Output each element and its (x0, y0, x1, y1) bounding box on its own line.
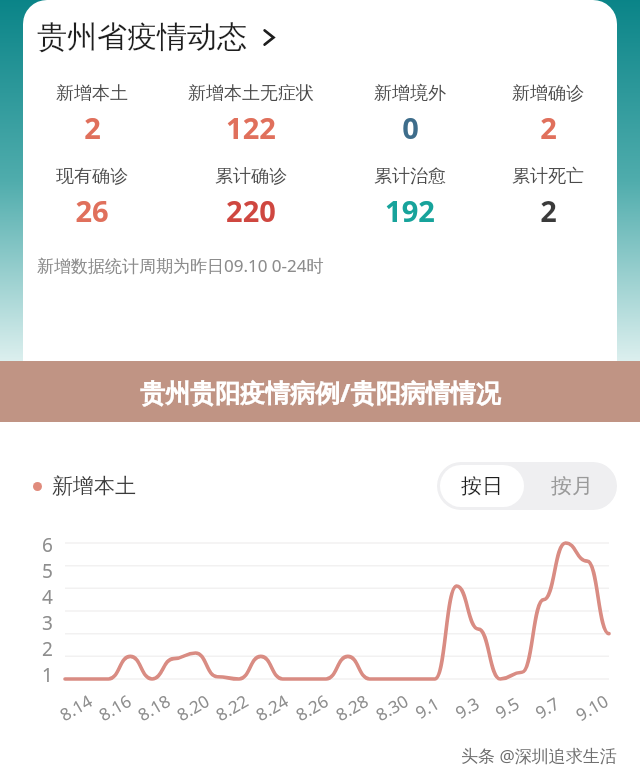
staticText: 122 (226, 108, 276, 147)
staticText: 新增确诊 (512, 82, 584, 105)
staticText: 0 (402, 108, 419, 147)
staticText: 2 (42, 636, 53, 662)
button[interactable]: 新增境外 (341, 82, 479, 147)
staticText: 9.1 (411, 691, 444, 724)
staticText: 现有确诊 (56, 165, 128, 188)
staticText: 按日 (461, 473, 503, 499)
staticText: 192 (385, 191, 435, 230)
staticText: 9.5 (491, 691, 524, 724)
staticText: 累计确诊 (215, 165, 287, 188)
button[interactable]: 贵州省疫情动态 (37, 18, 278, 56)
staticText: 新增境外 (374, 82, 446, 105)
staticText: 2 (540, 191, 557, 230)
staticText: 头条 @深圳追求生活 (461, 744, 617, 767)
staticText: 按月 (551, 473, 593, 499)
staticText: 8.22 (211, 689, 252, 726)
staticText: 3 (42, 610, 53, 636)
staticText: 8.20 (172, 689, 213, 726)
button[interactable]: 累计死亡 (479, 165, 617, 230)
button[interactable]: 新增确诊 (479, 82, 617, 147)
staticText: 1 (42, 662, 53, 688)
staticText: 贵州省疫情动态 (37, 18, 247, 56)
button[interactable]: 按月 (527, 462, 617, 510)
staticText: 8.28 (331, 689, 372, 726)
staticText: 5 (42, 558, 53, 584)
staticText: 8.16 (94, 689, 135, 726)
button[interactable]: 现有确诊 (23, 165, 161, 230)
button[interactable]: 累计治愈 (341, 165, 479, 230)
staticText: 新增本土 (52, 473, 136, 499)
staticText: 累计死亡 (512, 165, 584, 188)
button[interactable]: 累计确诊 (161, 165, 341, 230)
staticText: 新增数据统计周期为昨日09.10 0-24时 (37, 254, 324, 277)
staticText: 6 (42, 532, 53, 558)
staticText: 8.30 (371, 689, 412, 726)
staticText: 新增本土 (56, 82, 128, 105)
staticText: 贵州贵阳疫情病例/贵阳病情情况 (140, 375, 501, 409)
staticText: 8.14 (55, 689, 96, 726)
staticText: 新增本土无症状 (188, 82, 314, 105)
staticText: 2 (84, 108, 101, 147)
staticText: 9.3 (451, 691, 484, 724)
staticText: 8.18 (133, 689, 174, 726)
staticText: 累计治愈 (374, 165, 446, 188)
staticText: 220 (226, 191, 276, 230)
button[interactable]: 按日 (440, 465, 524, 507)
staticText: 9.7 (531, 691, 564, 724)
staticText: 8.26 (291, 689, 332, 726)
button[interactable]: 新增本土 (23, 82, 161, 147)
other: More (259, 28, 278, 47)
staticText: 26 (75, 191, 109, 230)
staticText: 9.10 (571, 689, 612, 726)
staticText: 2 (540, 108, 557, 147)
staticText: 4 (42, 584, 53, 610)
button[interactable]: 新增本土无症状 (161, 82, 341, 147)
staticText: 8.24 (251, 689, 292, 726)
